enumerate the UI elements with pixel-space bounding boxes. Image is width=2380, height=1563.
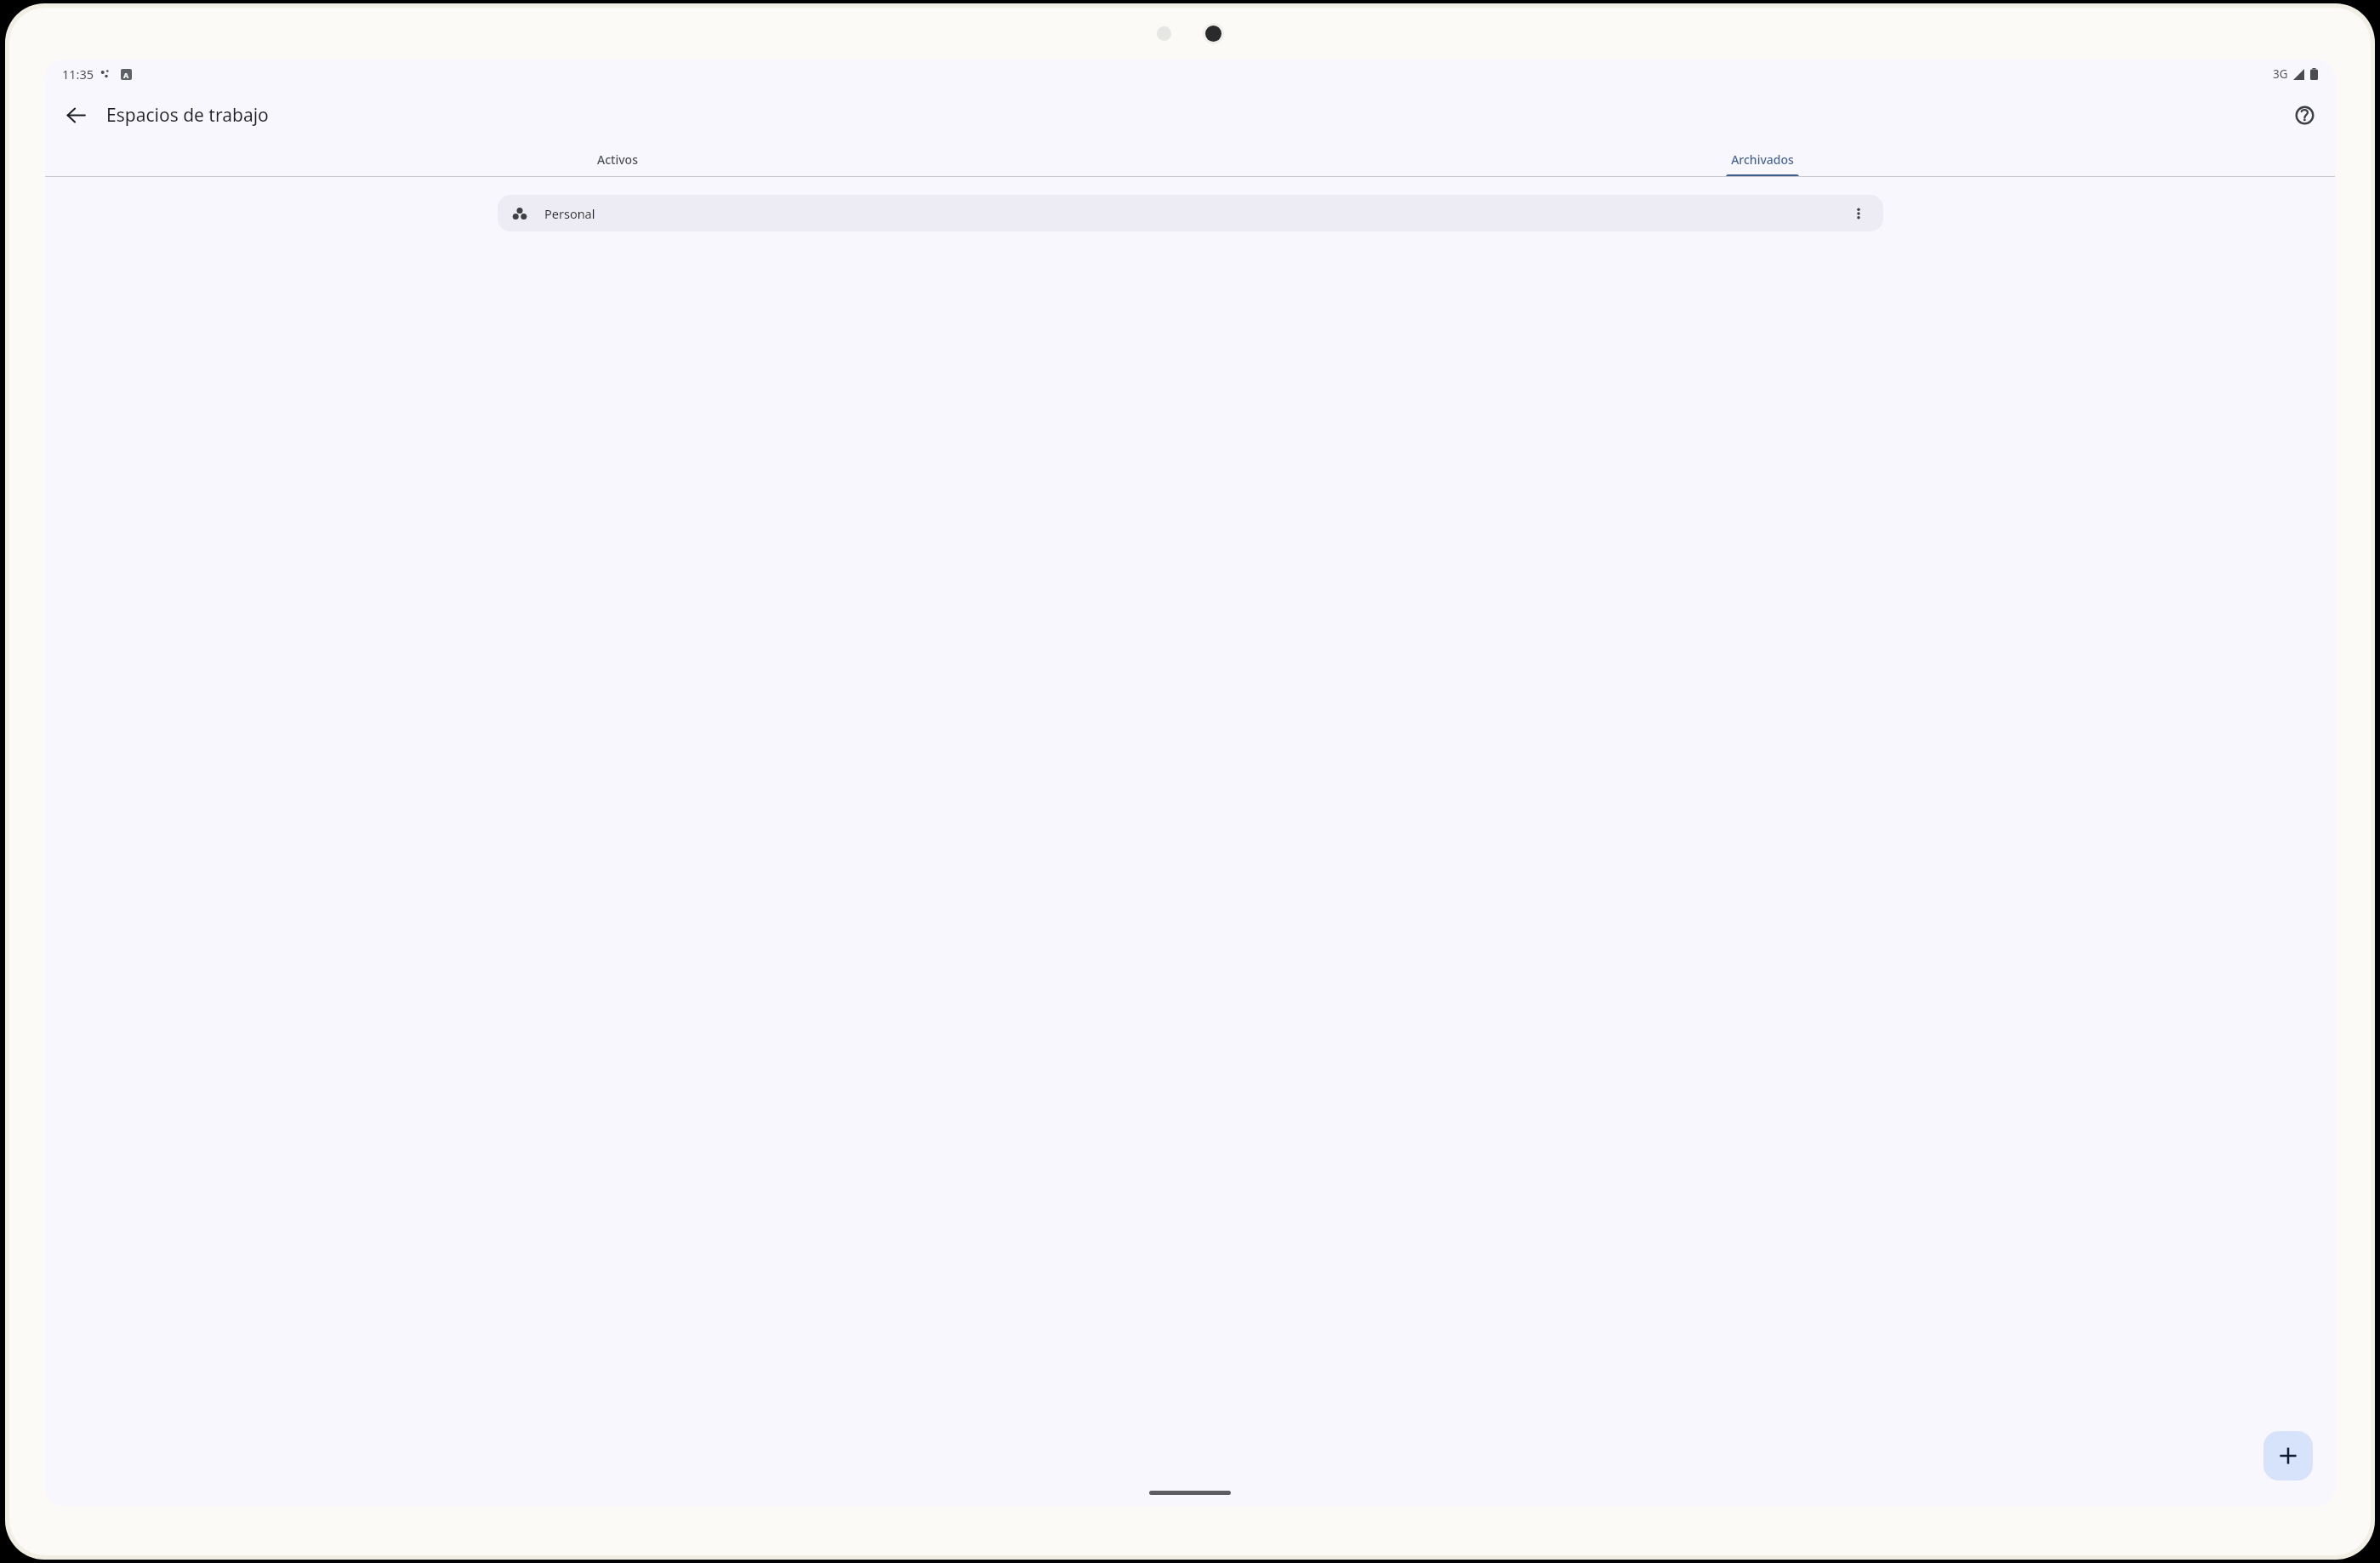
staticText: Activos: [597, 151, 638, 168]
staticText: Personal: [544, 205, 595, 222]
staticText: 11:35: [62, 66, 94, 83]
button[interactable]: Personal: [498, 195, 1883, 231]
button[interactable]: Atrás: [57, 96, 94, 134]
staticText: Archivados: [1731, 151, 1794, 168]
button[interactable]: Más opciones: [1842, 197, 1875, 230]
button[interactable]: Ayuda: [2286, 96, 2323, 134]
staticText: Espacios de trabajo: [106, 103, 269, 128]
button[interactable]: Archivados: [1190, 141, 2335, 177]
button[interactable]: Activos: [45, 141, 1190, 177]
staticText: A: [123, 70, 129, 80]
staticText: 3G: [2273, 66, 2288, 82]
button[interactable]: Crear espacio de trabajo: [2263, 1431, 2313, 1480]
